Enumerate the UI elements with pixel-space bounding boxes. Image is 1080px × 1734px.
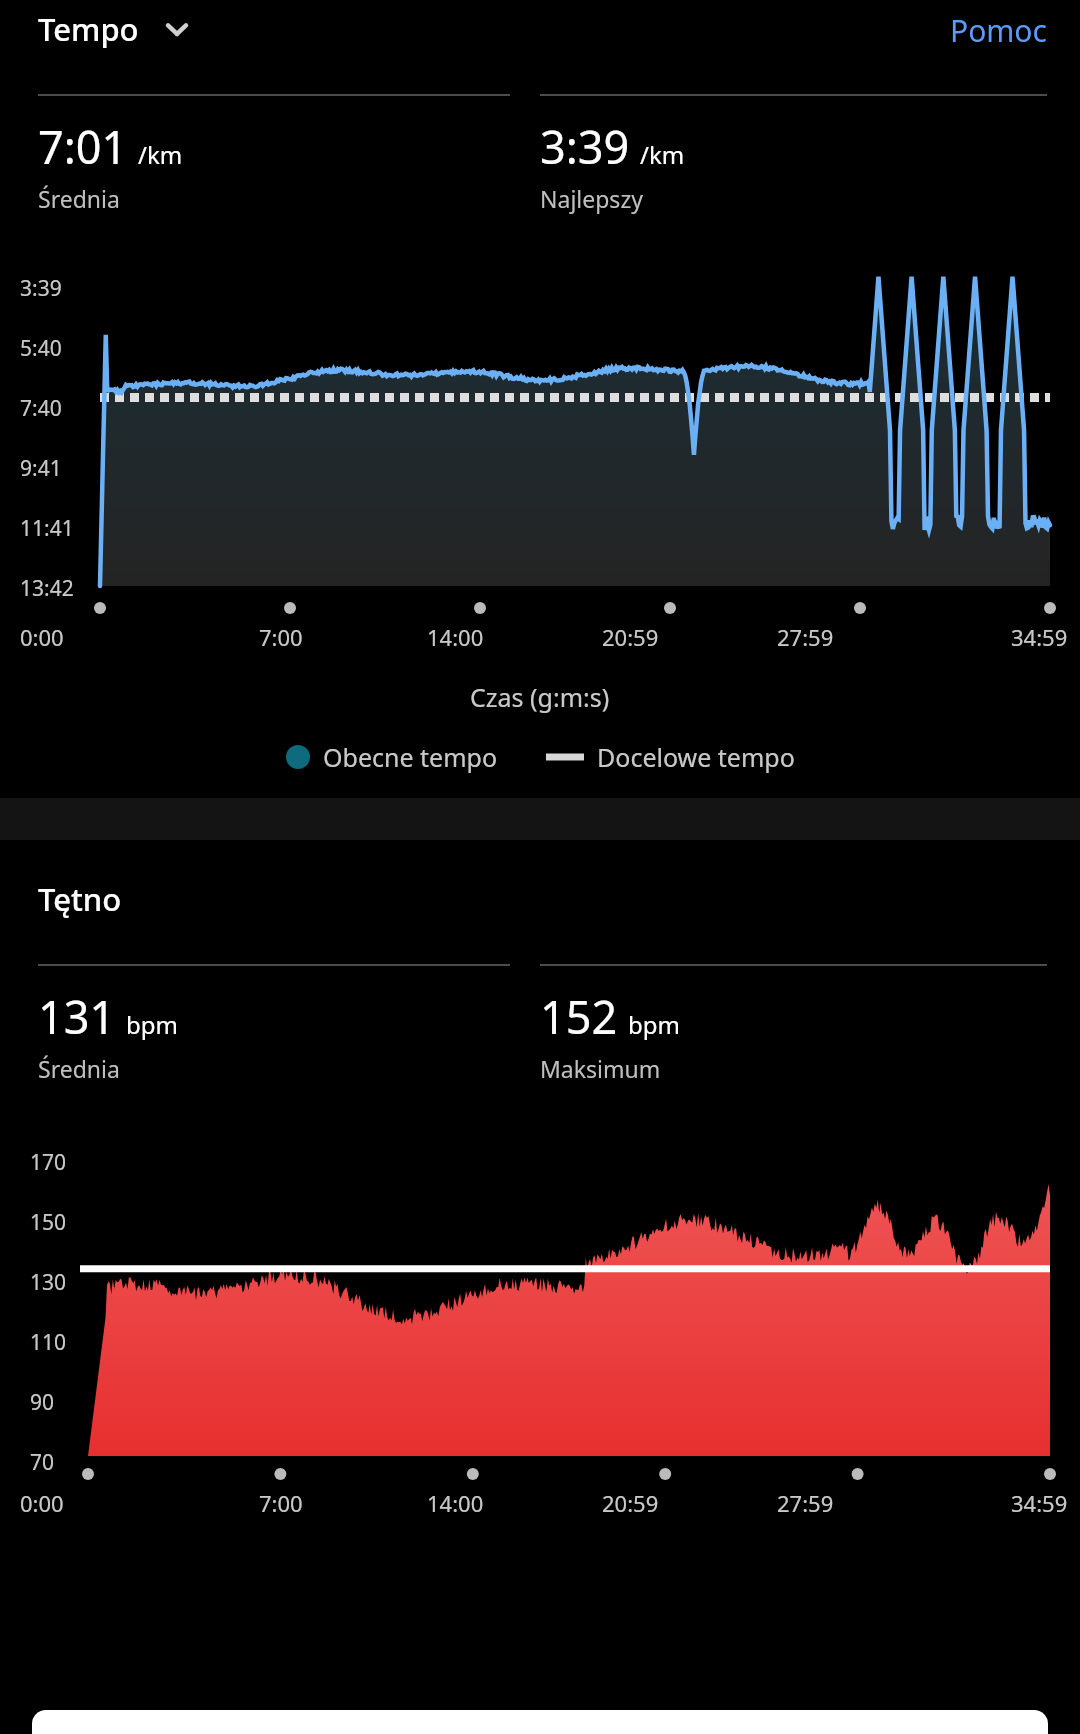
staticText: 27:59: [777, 1488, 834, 1518]
staticText: Tętno: [38, 878, 122, 920]
staticText: 20:59: [602, 1488, 659, 1518]
staticText: 14:00: [427, 1488, 484, 1518]
staticText: Tempo: [38, 8, 139, 50]
staticText: 0:00: [20, 1488, 64, 1518]
staticText: 110: [30, 1328, 67, 1357]
staticText: Docelowe tempo: [597, 740, 795, 774]
staticText: 14:00: [427, 622, 484, 652]
staticText: 170: [30, 1148, 67, 1177]
staticText: 27:59: [777, 622, 834, 652]
staticText: /km: [138, 138, 183, 171]
staticText: Czas (g:m:s): [470, 680, 610, 714]
staticText: bpm: [628, 1008, 680, 1041]
staticText: 34:59: [1011, 622, 1068, 652]
staticText: 150: [30, 1208, 67, 1237]
button[interactable]: Pomoc: [917, 0, 1080, 58]
staticText: 13:42: [20, 574, 74, 603]
staticText: Najlepszy: [540, 183, 643, 214]
staticText: bpm: [126, 1008, 178, 1041]
staticText: 7:40: [20, 394, 62, 423]
staticText: 3:39: [540, 116, 630, 177]
staticText: 70: [30, 1448, 55, 1477]
staticText: Pomoc: [950, 10, 1047, 48]
staticText: 5:40: [20, 334, 62, 363]
staticText: 7:01: [38, 116, 128, 177]
staticText: Maksimum: [540, 1053, 661, 1084]
button[interactable]: [32, 1710, 1048, 1734]
staticText: 34:59: [1011, 1488, 1068, 1518]
staticText: Średnia: [38, 1053, 120, 1084]
button[interactable]: Obecne tempo: [286, 740, 498, 774]
staticText: 20:59: [602, 622, 659, 652]
staticText: 152: [540, 986, 618, 1047]
staticText: 9:41: [20, 454, 62, 483]
staticText: Obecne tempo: [323, 740, 498, 774]
staticText: 130: [30, 1268, 67, 1297]
staticText: 11:41: [20, 514, 74, 543]
staticText: 131: [38, 986, 116, 1047]
staticText: Średnia: [38, 183, 120, 214]
staticText: 7:00: [259, 622, 303, 652]
staticText: /km: [640, 138, 685, 171]
staticText: 0:00: [20, 622, 64, 652]
staticText: 7:00: [259, 1488, 303, 1518]
button[interactable]: Docelowe tempo: [546, 740, 795, 774]
button[interactable]: Tempo: [0, 8, 209, 50]
staticText: 3:39: [20, 274, 62, 303]
staticText: 90: [30, 1388, 55, 1417]
other: Zmień wykres: [161, 13, 193, 45]
